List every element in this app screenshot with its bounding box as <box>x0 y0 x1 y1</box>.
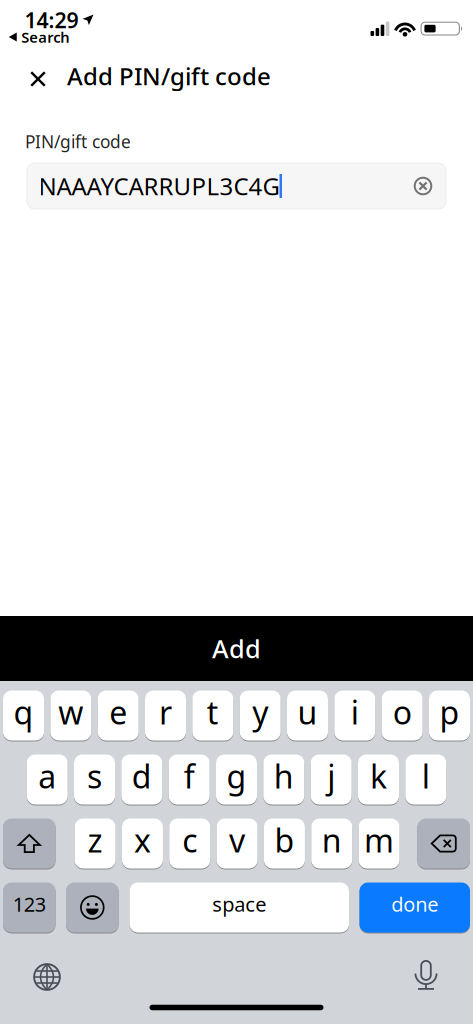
staticText: h <box>274 755 294 797</box>
staticText: l <box>422 755 430 797</box>
button[interactable]: Shift <box>3 818 56 869</box>
staticText: i <box>351 691 359 733</box>
button[interactable]: u <box>287 690 328 741</box>
button[interactable]: Clear text <box>408 171 438 201</box>
button[interactable]: done <box>359 882 470 933</box>
staticText: e <box>109 691 127 733</box>
button[interactable]: g <box>216 754 257 805</box>
button[interactable]: t <box>192 690 233 741</box>
button[interactable]: Dictation <box>406 953 446 997</box>
button[interactable]: v <box>217 818 258 869</box>
button[interactable]: q <box>3 690 44 741</box>
button[interactable]: s <box>74 754 115 805</box>
button[interactable]: p <box>429 690 470 741</box>
staticText: z <box>88 819 103 861</box>
staticText: j <box>327 755 335 797</box>
button[interactable]: z <box>75 818 116 869</box>
staticText: y <box>252 691 268 733</box>
button[interactable]: m <box>359 818 400 869</box>
button[interactable]: Add <box>0 616 473 681</box>
button[interactable]: b <box>264 818 305 869</box>
staticText: v <box>229 819 245 861</box>
button[interactable]: r <box>145 690 186 741</box>
button[interactable]: x <box>122 818 163 869</box>
button[interactable]: k <box>358 754 399 805</box>
staticText: x <box>134 819 151 861</box>
button[interactable]: space <box>129 882 349 933</box>
staticText: f <box>184 755 195 797</box>
button[interactable]: n <box>311 818 352 869</box>
staticText: g <box>226 755 246 797</box>
button[interactable]: Delete <box>417 818 470 869</box>
staticText: o <box>393 691 412 733</box>
staticText: s <box>87 755 102 797</box>
staticText: m <box>364 819 394 861</box>
staticText: b <box>274 819 294 861</box>
staticText: done <box>391 891 438 917</box>
button[interactable]: h <box>263 754 304 805</box>
button[interactable]: j <box>311 754 352 805</box>
button[interactable]: PIN/gift code text field <box>27 163 446 209</box>
button[interactable]: i <box>334 690 375 741</box>
staticText: 123 <box>13 891 46 917</box>
staticText: NAAAYCARRUPL3C4G <box>38 170 279 202</box>
button[interactable]: Emoji <box>66 882 119 933</box>
button[interactable]: c <box>169 818 210 869</box>
staticText: r <box>159 691 172 733</box>
button[interactable]: e <box>98 690 139 741</box>
staticText: p <box>439 691 459 733</box>
staticText: 14:29 <box>24 6 78 34</box>
button[interactable]: y <box>240 690 281 741</box>
staticText: w <box>58 691 83 733</box>
staticText: d <box>132 755 152 797</box>
staticText: Add PIN/gift code <box>67 60 271 92</box>
button[interactable]: w <box>50 690 91 741</box>
button[interactable]: a <box>27 754 68 805</box>
staticText: space <box>212 891 266 917</box>
staticText: Search <box>21 27 69 47</box>
staticText: q <box>13 691 33 733</box>
button[interactable]: f <box>169 754 210 805</box>
staticText: k <box>370 755 387 797</box>
button[interactable]: l <box>405 754 446 805</box>
button[interactable]: Next keyboard <box>25 955 69 999</box>
staticText: PIN/gift code <box>25 130 131 153</box>
staticText: Add <box>212 632 261 665</box>
staticText: a <box>38 755 56 797</box>
button[interactable]: Close <box>21 62 55 96</box>
button[interactable]: 123 <box>3 882 56 933</box>
staticText: u <box>297 691 317 733</box>
button[interactable]: o <box>382 690 423 741</box>
staticText: c <box>182 819 197 861</box>
staticText: n <box>322 819 342 861</box>
button[interactable]: d <box>121 754 162 805</box>
staticText: t <box>207 691 219 733</box>
